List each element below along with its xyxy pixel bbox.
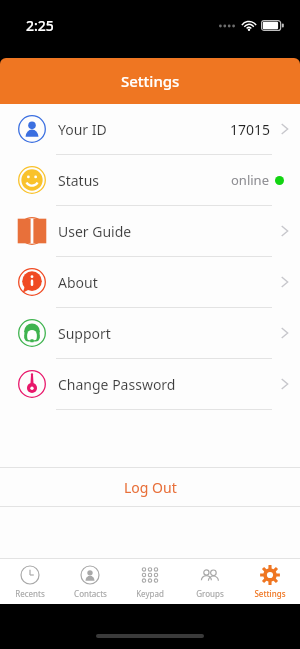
staticText: 2:25 [26, 16, 54, 35]
staticText: User Guide [58, 222, 132, 241]
button[interactable]: Contacts [60, 559, 120, 604]
button[interactable]: Status [0, 155, 300, 205]
button[interactable]: User Guide [0, 206, 300, 256]
button[interactable]: Recents [0, 559, 60, 604]
button[interactable]: Your ID [0, 104, 300, 154]
staticText: Change Password [58, 375, 176, 394]
button[interactable]: Change Password [0, 359, 300, 409]
button[interactable]: Groups [180, 559, 240, 604]
staticText: Status [58, 171, 100, 190]
staticText: online [231, 171, 269, 189]
staticText: Contacts [74, 588, 107, 599]
staticText: Keypad [136, 588, 164, 599]
staticText: Your ID [58, 120, 107, 139]
staticText: Groups [196, 588, 224, 599]
button[interactable]: About [0, 257, 300, 307]
button[interactable]: Keypad [120, 559, 180, 604]
staticText: Settings [254, 588, 286, 599]
staticText: Log Out [124, 478, 177, 497]
staticText: 17015 [230, 120, 271, 139]
staticText: About [58, 273, 98, 292]
staticText: Recents [15, 588, 45, 599]
button[interactable]: Log Out [0, 468, 300, 506]
staticText: Support [58, 324, 111, 343]
staticText: Settings [121, 71, 180, 91]
button[interactable]: Support [0, 308, 300, 358]
button[interactable]: Settings [240, 559, 300, 604]
